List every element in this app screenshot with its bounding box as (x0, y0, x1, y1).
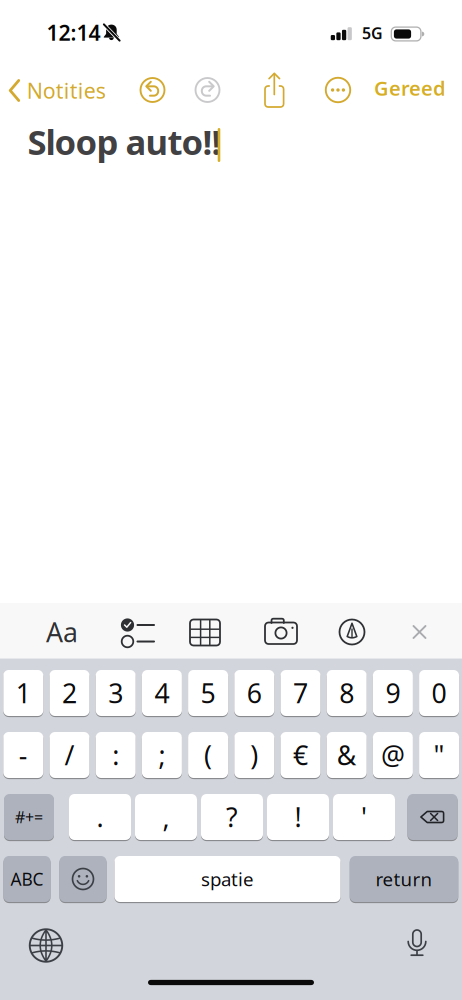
staticText: 0 (432, 675, 447, 711)
staticText: 6 (247, 675, 262, 711)
button[interactable]: ? (201, 794, 263, 840)
staticText: @ (381, 737, 405, 773)
button[interactable]: & (327, 732, 367, 778)
staticText: 9 (385, 675, 400, 711)
staticText: " (434, 737, 445, 773)
button[interactable]: ' (333, 794, 395, 840)
staticText: € (293, 737, 308, 773)
staticText: ABC (10, 867, 43, 890)
button[interactable]: 1 (3, 670, 43, 716)
staticText: 7 (293, 675, 308, 711)
button[interactable]: ( (188, 732, 228, 778)
button[interactable]: return (350, 856, 458, 902)
button[interactable]: Share (261, 72, 288, 108)
button[interactable]: 2 (49, 670, 89, 716)
button[interactable]: spatie (114, 856, 340, 902)
button[interactable]: Format (38, 612, 86, 652)
staticText: 4 (154, 675, 169, 711)
button[interactable]: 6 (234, 670, 274, 716)
button[interactable]: 3 (96, 670, 136, 716)
button[interactable]: More (325, 77, 351, 103)
button[interactable]: , (135, 794, 197, 840)
staticText: 1 (16, 675, 31, 711)
staticText: & (337, 737, 357, 773)
staticText: ? (226, 799, 238, 835)
button[interactable]: ; (142, 732, 182, 778)
staticText: Gereed (374, 75, 446, 101)
staticText: ' (361, 799, 367, 835)
button[interactable]: / (49, 732, 89, 778)
button[interactable]: Camera (264, 618, 298, 646)
staticText: , (162, 799, 169, 835)
staticText: 5G (362, 22, 383, 44)
staticText: Sloop auto!! (27, 118, 221, 164)
button[interactable]: 9 (373, 670, 413, 716)
button[interactable]: 8 (327, 670, 367, 716)
button[interactable]: Dismiss keyboard (407, 620, 431, 644)
staticText: return (375, 867, 432, 891)
staticText: 3 (108, 675, 123, 711)
button[interactable]: : (96, 732, 136, 778)
button[interactable]: @ (373, 732, 413, 778)
staticText: : (112, 737, 119, 773)
button[interactable]: - (3, 732, 43, 778)
staticText: - (19, 737, 28, 773)
staticText: 12:14 (46, 18, 100, 47)
staticText: 8 (339, 675, 354, 711)
button[interactable]: € (280, 732, 320, 778)
button[interactable]: " (419, 732, 459, 778)
button[interactable]: ) (234, 732, 274, 778)
button[interactable]: #+= (4, 794, 54, 840)
staticText: . (96, 799, 103, 835)
staticText: #+= (15, 806, 43, 828)
button[interactable]: Delete (407, 794, 457, 840)
button[interactable]: Emoji (59, 856, 106, 902)
button[interactable]: Gereed (374, 75, 446, 101)
staticText: ; (158, 737, 165, 773)
button[interactable]: 5 (188, 670, 228, 716)
button[interactable]: Markup (338, 618, 365, 645)
staticText: 2 (62, 675, 77, 711)
staticText: ) (250, 737, 258, 773)
staticText: spatie (201, 867, 254, 891)
button[interactable]: Redo (194, 77, 220, 103)
button[interactable]: 7 (280, 670, 320, 716)
button[interactable]: 4 (142, 670, 182, 716)
button[interactable]: Table (189, 617, 221, 647)
staticText: Aa (46, 614, 78, 650)
staticText: ( (204, 737, 212, 773)
button[interactable]: Checklist (118, 616, 156, 650)
staticText: / (64, 737, 74, 773)
button[interactable]: Undo (139, 77, 165, 103)
staticText: Notities (27, 76, 106, 105)
button[interactable]: ABC (3, 856, 50, 902)
button[interactable]: ! (267, 794, 329, 840)
button[interactable]: Next keyboard (29, 928, 63, 962)
button[interactable]: Notities (8, 75, 106, 105)
button[interactable]: 0 (419, 670, 459, 716)
button[interactable]: Dictation (403, 929, 431, 959)
button[interactable]: . (69, 794, 131, 840)
staticText: 5 (201, 675, 216, 711)
staticText: ! (294, 799, 301, 835)
